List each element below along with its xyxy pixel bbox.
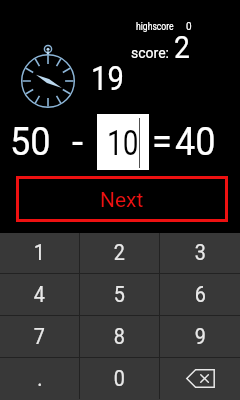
- staticText: 0: [186, 21, 192, 33]
- staticText: 7: [34, 324, 45, 350]
- staticText: 4: [34, 282, 45, 308]
- staticText: score:: [131, 45, 169, 61]
- button[interactable]: 4: [0, 274, 79, 315]
- button[interactable]: 9: [160, 316, 240, 357]
- staticText: 8: [114, 324, 125, 350]
- staticText: 10: [107, 123, 139, 164]
- staticText: =: [152, 120, 172, 165]
- button[interactable]: 3: [160, 233, 240, 273]
- button[interactable]: 7: [0, 316, 79, 357]
- staticText: 40: [175, 120, 216, 165]
- button[interactable]: 6: [160, 274, 240, 315]
- staticText: 19: [91, 58, 124, 98]
- staticText: 6: [195, 282, 206, 308]
- button[interactable]: 10: [97, 114, 149, 170]
- staticText: Next: [100, 188, 144, 213]
- staticText: 0: [114, 366, 125, 392]
- button[interactable]: Backspace: [160, 358, 240, 399]
- button[interactable]: 2: [80, 233, 159, 273]
- staticText: 9: [195, 324, 206, 350]
- staticText: 5: [114, 282, 125, 308]
- staticText: -: [72, 119, 84, 166]
- button[interactable]: 5: [80, 274, 159, 315]
- button[interactable]: 1: [0, 233, 79, 273]
- staticText: highscore: [136, 21, 174, 33]
- staticText: 50: [10, 120, 51, 165]
- button[interactable]: .: [0, 358, 79, 399]
- staticText: 2: [174, 28, 190, 66]
- staticText: 3: [195, 240, 206, 266]
- button[interactable]: Next: [16, 176, 228, 222]
- staticText: 2: [114, 240, 125, 266]
- button[interactable]: 0: [80, 358, 159, 399]
- staticText: .: [37, 366, 43, 392]
- button[interactable]: 8: [80, 316, 159, 357]
- staticText: 1: [34, 240, 45, 266]
